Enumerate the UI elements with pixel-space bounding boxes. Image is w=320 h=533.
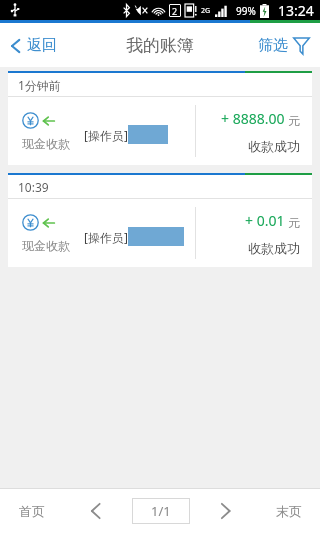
staticText: 首页 [19,503,45,519]
staticText: [操作员] [84,229,128,245]
other: Filter [293,36,310,55]
button[interactable]: Previous page [64,489,127,533]
staticText: 2G [201,6,211,16]
staticText: 筛选 [258,36,288,55]
button[interactable]: 1分钟前 [8,71,312,165]
staticText: 现金收款 [22,136,70,151]
button[interactable]: 筛选 [248,28,320,63]
staticText: 元 [288,215,300,230]
staticText: 收款成功 [248,240,300,256]
staticText: 收款成功 [248,138,300,154]
staticText: 返回 [27,36,57,55]
staticText: 1/1 [151,502,171,520]
button[interactable]: 返回 [0,28,69,63]
staticText: 13:24 [278,1,314,20]
staticText: 2 [172,5,178,17]
staticText: 我的账簿 [126,35,194,56]
staticText: [操作员] [84,127,128,143]
staticText: 元 [288,113,300,128]
button[interactable]: 1/1 [132,498,190,524]
staticText: 10:39 [18,179,49,195]
button[interactable]: 首页 [0,489,64,533]
staticText: 1分钟前 [18,77,61,93]
staticText: 99% [236,4,256,18]
button[interactable]: 末页 [257,489,320,533]
button[interactable]: 10:39 [8,173,312,267]
staticText: 现金收款 [22,238,70,253]
staticText: + 8888.00 [221,109,285,128]
staticText: 末页 [276,503,302,519]
button[interactable]: Next page [194,489,257,533]
staticText: + 0.01 [245,211,285,230]
